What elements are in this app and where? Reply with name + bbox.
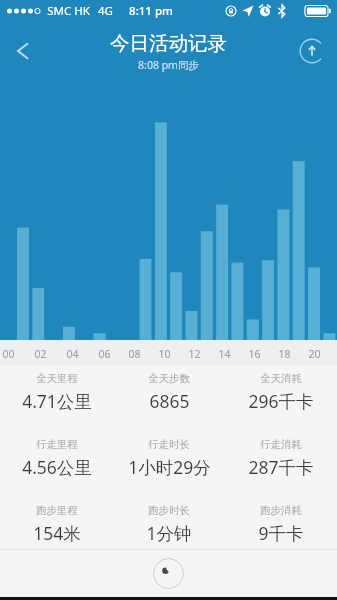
staticText: 行走里程 xyxy=(36,438,78,451)
staticText: 6865 xyxy=(149,389,190,413)
staticText: 04 xyxy=(66,347,79,361)
staticText: 10 xyxy=(158,347,171,361)
button[interactable]: Sleep xyxy=(153,558,184,589)
button[interactable]: 行走时长 xyxy=(113,436,225,481)
staticText: 154米 xyxy=(33,521,81,545)
staticText: 今日活动记录 xyxy=(110,31,227,56)
staticText: 18 xyxy=(278,347,291,361)
button[interactable]: 全天步数 xyxy=(113,370,225,415)
staticText: 00 xyxy=(2,347,15,361)
staticText: 16 xyxy=(248,347,261,361)
staticText: 296千卡 xyxy=(248,389,314,413)
staticText: 14 xyxy=(218,347,231,361)
button[interactable]: 跑步时长 xyxy=(113,502,225,547)
staticText: 12 xyxy=(188,347,201,361)
button[interactable]: 全天里程 xyxy=(0,370,113,415)
button[interactable]: 行走里程 xyxy=(0,436,113,481)
staticText: 08 xyxy=(128,347,141,361)
staticText: SMC HK xyxy=(47,3,90,19)
staticText: 4G xyxy=(98,3,113,19)
button[interactable]: Back xyxy=(0,22,46,80)
staticText: 4.56公里 xyxy=(22,455,92,479)
staticText: 4.71公里 xyxy=(22,389,92,413)
staticText: 全天消耗 xyxy=(260,372,302,385)
button[interactable]: 全天消耗 xyxy=(225,370,337,415)
staticText: 1分钟 xyxy=(146,521,192,545)
staticText: 9千卡 xyxy=(258,521,304,545)
staticText: 06 xyxy=(98,347,111,361)
button[interactable]: Share xyxy=(298,37,326,65)
staticText: 行走时长 xyxy=(148,438,190,451)
button[interactable]: 行走消耗 xyxy=(225,436,337,481)
staticText: 全天里程 xyxy=(36,372,78,385)
staticText: 跑步时长 xyxy=(148,504,190,517)
staticText: 8:11 pm xyxy=(129,3,173,19)
staticText: 20 xyxy=(308,347,321,361)
staticText: 全天步数 xyxy=(148,372,190,385)
staticText: 287千卡 xyxy=(248,455,314,479)
button[interactable]: 跑步消耗 xyxy=(225,502,337,547)
staticText: 8:08 pm同步 xyxy=(138,58,199,72)
staticText: 行走消耗 xyxy=(260,438,302,451)
staticText: 跑步消耗 xyxy=(260,504,302,517)
staticText: 02 xyxy=(34,347,47,361)
staticText: 跑步里程 xyxy=(36,504,78,517)
staticText: 1小时29分 xyxy=(128,455,211,479)
button[interactable]: 跑步里程 xyxy=(0,502,113,547)
